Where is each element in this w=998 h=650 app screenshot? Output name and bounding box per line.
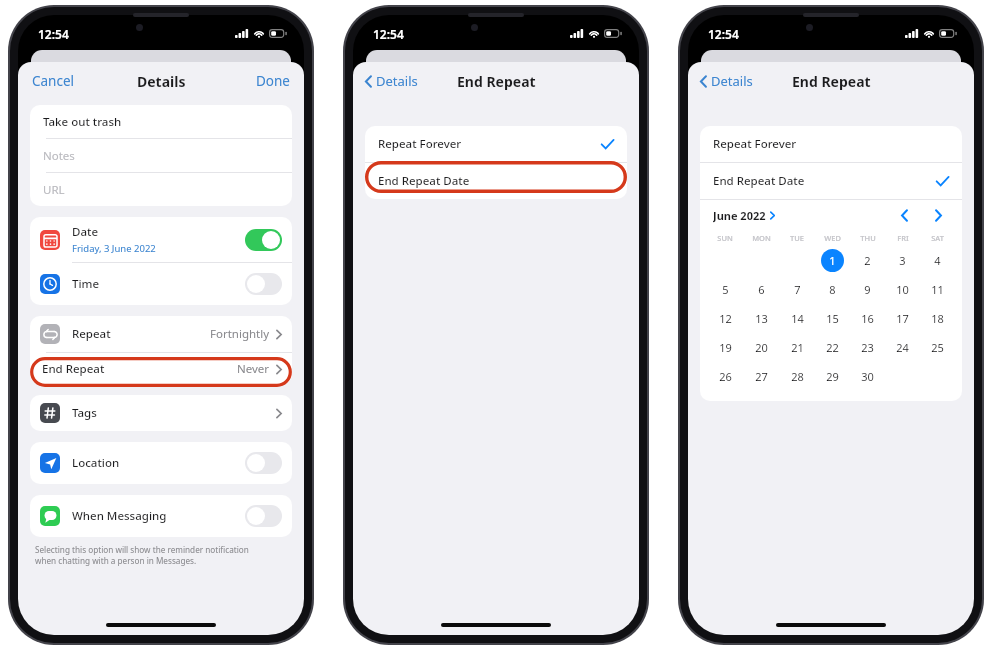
button[interactable]: 3 xyxy=(891,249,914,272)
staticText: SAT xyxy=(931,233,944,243)
staticText: 16 xyxy=(861,311,874,326)
staticText: Repeat Forever xyxy=(378,136,462,152)
staticText: 5 xyxy=(722,282,729,297)
staticText: 28 xyxy=(791,369,804,384)
button[interactable]: Switch off xyxy=(245,505,282,527)
button[interactable]: 17 xyxy=(891,307,914,330)
staticText: 12:54 xyxy=(38,26,69,42)
button[interactable]: 26 xyxy=(714,365,737,388)
button[interactable]: 6 xyxy=(750,278,773,301)
button[interactable]: 13 xyxy=(750,307,773,330)
staticText: When Messaging xyxy=(72,508,167,524)
button[interactable]: Switch off xyxy=(245,273,282,295)
button[interactable]: 14 xyxy=(786,307,809,330)
button[interactable]: End Repeat xyxy=(30,353,292,384)
button[interactable]: June 2022 xyxy=(713,205,775,226)
button[interactable]: Take out trash xyxy=(30,105,292,138)
button[interactable]: Cancel xyxy=(24,67,83,95)
staticText: Repeat xyxy=(72,326,210,342)
staticText: Friday, 3 June 2022 xyxy=(72,242,156,255)
staticText: FRI xyxy=(897,233,909,243)
staticText: 11 xyxy=(931,282,944,297)
staticText: 14 xyxy=(791,311,804,326)
staticText: 15 xyxy=(826,311,839,326)
button[interactable]: End Repeat Date xyxy=(365,163,627,199)
button[interactable]: Repeat Forever xyxy=(700,126,962,162)
staticText: 9 xyxy=(864,282,871,297)
button[interactable]: 20 xyxy=(750,336,773,359)
button[interactable]: 2 xyxy=(856,249,879,272)
button[interactable]: When Messaging xyxy=(30,495,292,537)
staticText: 25 xyxy=(931,340,944,355)
button[interactable]: Repeat xyxy=(30,316,292,352)
button[interactable]: 28 xyxy=(786,365,809,388)
staticText: Notes xyxy=(43,148,75,164)
button[interactable]: Tags xyxy=(30,395,292,431)
staticText: MON xyxy=(752,233,771,243)
button[interactable]: 7 xyxy=(786,278,809,301)
button[interactable]: 9 xyxy=(856,278,879,301)
staticText: Take out trash xyxy=(43,114,122,130)
staticText: 13 xyxy=(755,311,768,326)
staticText: 23 xyxy=(861,340,874,355)
staticText: Selecting this option will show the remi… xyxy=(35,544,249,566)
staticText: End Repeat xyxy=(457,72,536,91)
staticText: 6 xyxy=(758,282,765,297)
button[interactable]: 22 xyxy=(821,336,844,359)
button[interactable]: 11 xyxy=(926,278,949,301)
button[interactable]: Notes xyxy=(30,139,292,172)
button[interactable]: 10 xyxy=(891,278,914,301)
staticText: Time xyxy=(72,276,100,292)
staticText: End Repeat Date xyxy=(378,173,470,189)
button[interactable]: Repeat Forever xyxy=(365,126,627,162)
staticText: 18 xyxy=(931,311,944,326)
button[interactable]: Switch on xyxy=(245,229,282,251)
staticText: Repeat Forever xyxy=(713,136,797,152)
button[interactable]: Previous month xyxy=(893,204,915,226)
button[interactable]: 25 xyxy=(926,336,949,359)
staticText: End Repeat Date xyxy=(713,173,805,189)
staticText: 2 xyxy=(864,253,871,268)
staticText: WED xyxy=(824,233,841,243)
button[interactable]: URL xyxy=(30,173,292,206)
button[interactable]: Time xyxy=(30,263,292,305)
button[interactable]: 4 xyxy=(926,249,949,272)
button[interactable]: Switch off xyxy=(245,452,282,474)
button[interactable]: End Repeat Date xyxy=(700,163,962,199)
button[interactable]: Location xyxy=(30,442,292,484)
button[interactable]: 24 xyxy=(891,336,914,359)
staticText: 22 xyxy=(826,340,839,355)
button[interactable]: 8 xyxy=(821,278,844,301)
staticText: Date xyxy=(72,224,98,240)
staticText: 12:54 xyxy=(373,26,404,42)
button[interactable]: 21 xyxy=(786,336,809,359)
staticText: 27 xyxy=(755,369,768,384)
button[interactable]: 29 xyxy=(821,365,844,388)
button[interactable]: Done xyxy=(248,67,298,95)
button[interactable]: 15 xyxy=(821,307,844,330)
button[interactable]: 18 xyxy=(926,307,949,330)
staticText: Done xyxy=(256,72,290,90)
button[interactable]: 5 xyxy=(714,278,737,301)
staticText: 10 xyxy=(896,282,909,297)
button[interactable]: Details xyxy=(694,67,759,95)
button[interactable]: Next month xyxy=(927,204,949,226)
button[interactable]: 1 xyxy=(821,249,844,272)
button[interactable]: 19 xyxy=(714,336,737,359)
staticText: End Repeat xyxy=(42,361,105,377)
staticText: Tags xyxy=(72,405,276,421)
staticText: Never xyxy=(237,361,270,377)
staticText: 30 xyxy=(861,369,874,384)
staticText: Details xyxy=(711,72,753,90)
button[interactable]: 23 xyxy=(856,336,879,359)
button[interactable]: 12 xyxy=(714,307,737,330)
staticText: 24 xyxy=(896,340,909,355)
staticText: Details xyxy=(137,72,186,91)
button[interactable]: 30 xyxy=(856,365,879,388)
staticText: SUN xyxy=(717,233,733,243)
button[interactable]: 27 xyxy=(750,365,773,388)
button[interactable]: 16 xyxy=(856,307,879,330)
staticText: 3 xyxy=(899,253,906,268)
button[interactable]: Details xyxy=(359,67,424,95)
button[interactable]: Date xyxy=(30,217,292,262)
